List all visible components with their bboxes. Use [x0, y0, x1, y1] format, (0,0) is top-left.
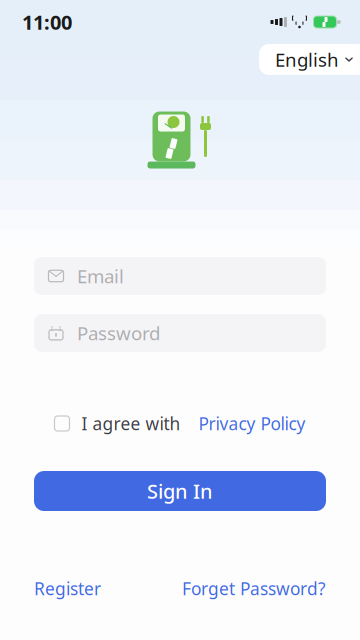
button[interactable]: Email — [34, 257, 326, 295]
staticText: I agree with — [81, 412, 180, 435]
staticText: 11:00 — [22, 9, 72, 35]
staticText: Privacy Policy — [198, 412, 305, 435]
button[interactable]: Privacy Policy — [198, 406, 305, 441]
button[interactable]: English — [259, 44, 360, 75]
staticText: Register — [34, 577, 101, 600]
button[interactable]: Password — [34, 314, 326, 352]
staticText: Password — [77, 321, 160, 345]
staticText: English — [275, 47, 339, 72]
staticText: Sign In — [147, 478, 213, 504]
staticText: Email — [77, 264, 124, 288]
button[interactable]: I agree with — [54, 406, 180, 441]
button[interactable]: Sign In — [34, 471, 326, 511]
button[interactable]: Forget Password? — [182, 571, 326, 606]
button[interactable]: Register — [34, 571, 101, 606]
staticText: Forget Password? — [182, 577, 326, 600]
